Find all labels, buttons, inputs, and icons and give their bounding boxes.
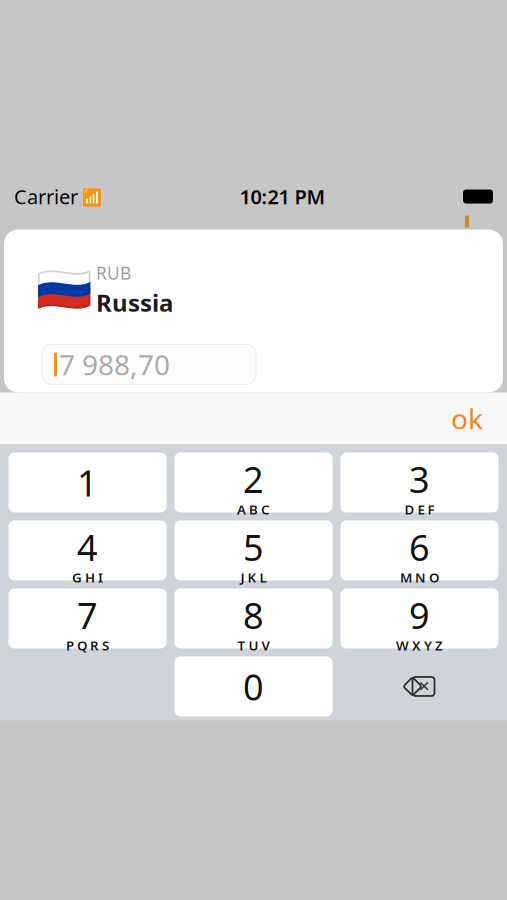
staticText: A B C bbox=[237, 500, 270, 518]
button[interactable]: Delete bbox=[340, 656, 498, 716]
button[interactable]: 3 bbox=[340, 452, 498, 512]
staticText: 8 bbox=[243, 591, 264, 639]
button[interactable]: 4 bbox=[8, 520, 166, 580]
staticText: 7 bbox=[77, 591, 98, 639]
button[interactable]: 9 bbox=[340, 588, 498, 648]
staticText: 0 bbox=[243, 662, 264, 710]
staticText: 2 bbox=[243, 455, 264, 503]
staticText: 4 bbox=[77, 523, 98, 571]
staticText: T U V bbox=[237, 636, 269, 654]
staticText: 3 bbox=[409, 455, 430, 503]
staticText: ✕ bbox=[418, 678, 430, 695]
button[interactable]: ok bbox=[437, 392, 497, 445]
staticText: W X Y Z bbox=[396, 636, 443, 654]
staticText: 10:21 PM bbox=[239, 183, 325, 210]
staticText: 9 bbox=[409, 591, 430, 639]
staticText: D E F bbox=[404, 500, 434, 518]
button[interactable]: 8 bbox=[174, 588, 332, 648]
staticText: 7 988,70 bbox=[59, 346, 170, 383]
button[interactable]: 5 bbox=[174, 520, 332, 580]
button[interactable]: 0 bbox=[174, 656, 332, 716]
button[interactable]: 1 bbox=[8, 452, 166, 512]
staticText: G H I bbox=[72, 568, 103, 586]
staticText: 📶 bbox=[78, 186, 102, 207]
staticText: J K L bbox=[240, 568, 266, 586]
button[interactable]: 6 bbox=[340, 520, 498, 580]
staticText: M N O bbox=[400, 568, 439, 586]
staticText: ok bbox=[451, 400, 483, 437]
staticText: Russia bbox=[96, 287, 173, 318]
staticText: 🇷🇺 bbox=[36, 264, 92, 316]
staticText: 5 bbox=[243, 523, 264, 571]
staticText: 1 bbox=[77, 458, 98, 506]
button[interactable]: 7 bbox=[8, 588, 166, 648]
staticText: RUB bbox=[96, 262, 131, 285]
staticText: Carrier bbox=[14, 183, 78, 210]
staticText: P Q R S bbox=[66, 636, 109, 654]
staticText: 6 bbox=[409, 523, 430, 571]
button[interactable]: 2 bbox=[174, 452, 332, 512]
